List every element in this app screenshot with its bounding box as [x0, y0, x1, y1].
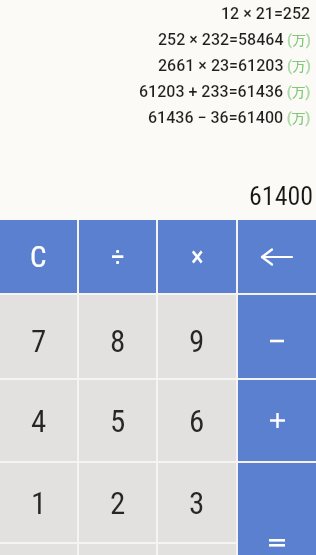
button[interactable]: 3	[158, 463, 236, 542]
staticText: 9	[189, 323, 205, 359]
staticText: 61436 − 36=61400 (万)	[148, 108, 311, 127]
staticText: 252 × 232=58464 (万)	[158, 30, 311, 49]
staticText: 61400	[249, 181, 314, 209]
staticText: 8	[110, 323, 126, 359]
staticText: 5	[110, 403, 126, 439]
staticText: 12 × 21=252	[221, 4, 311, 23]
button[interactable]: 9	[158, 295, 236, 378]
button[interactable]: C	[0, 220, 77, 293]
button[interactable]: 4	[0, 380, 77, 461]
staticText: 6	[189, 403, 205, 439]
button[interactable]: 8	[79, 295, 156, 378]
staticText: 3	[189, 485, 205, 521]
button[interactable]	[238, 220, 316, 293]
staticText: ×	[191, 241, 204, 273]
button[interactable]	[238, 295, 316, 378]
staticText: 2	[110, 485, 126, 521]
staticText: ÷	[111, 241, 125, 273]
staticText: 7	[31, 323, 47, 359]
button[interactable]: 2	[79, 463, 156, 542]
staticText: 61203 + 233=61436 (万)	[139, 82, 311, 101]
button[interactable]: 6	[158, 380, 236, 461]
staticText: C	[30, 240, 47, 274]
staticText: 2661 × 23=61203 (万)	[158, 56, 311, 75]
button[interactable]: ÷	[79, 220, 156, 293]
button[interactable]: ×	[158, 220, 236, 293]
staticText: 1	[31, 485, 47, 521]
button[interactable]	[238, 380, 316, 461]
staticText: 4	[31, 403, 47, 439]
button[interactable]: 5	[79, 380, 156, 461]
button[interactable]	[238, 463, 316, 555]
button[interactable]: 1	[0, 463, 77, 542]
button[interactable]: 7	[0, 295, 77, 378]
